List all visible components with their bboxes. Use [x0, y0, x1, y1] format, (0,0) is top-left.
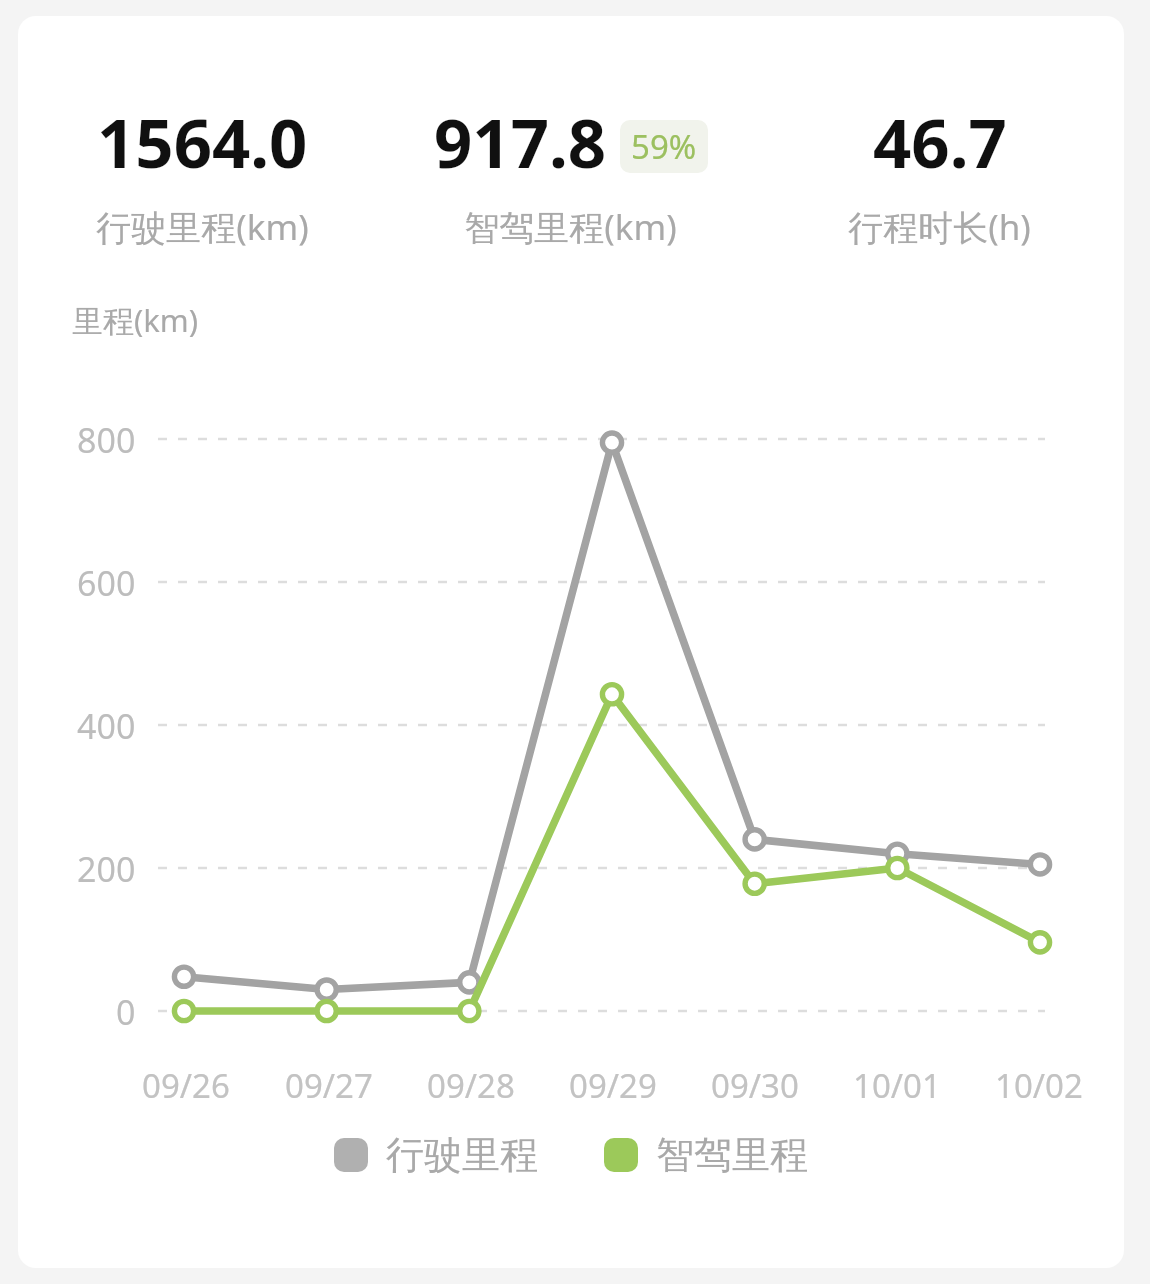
button[interactable]: 智驾里程 — [604, 1131, 808, 1179]
button[interactable]: 917.8 — [386, 96, 755, 251]
staticText: 智驾里程 — [656, 1131, 808, 1179]
staticText: 46.7 — [873, 96, 1007, 187]
staticText: 里程(km) — [72, 299, 199, 341]
staticText: 行驶里程(km) — [96, 203, 309, 251]
staticText: 09/30 — [711, 1063, 799, 1108]
staticText: 59% — [631, 124, 697, 169]
staticText: 800 — [77, 417, 136, 463]
staticText: 09/28 — [427, 1063, 515, 1108]
staticText: 智驾里程(km) — [464, 203, 677, 251]
staticText: 行驶里程 — [386, 1131, 538, 1179]
staticText: 200 — [77, 846, 136, 892]
button[interactable]: 行驶里程 — [334, 1131, 538, 1179]
staticText: 行程时长(h) — [848, 203, 1031, 251]
staticText: 10/02 — [995, 1063, 1083, 1108]
button[interactable]: 1564.0 — [18, 96, 386, 251]
staticText: 0 — [116, 989, 136, 1035]
staticText: 09/29 — [569, 1063, 657, 1108]
staticText: 400 — [77, 703, 136, 749]
staticText: 09/27 — [285, 1063, 373, 1108]
button[interactable]: 46.7 — [755, 96, 1124, 251]
staticText: 10/01 — [853, 1063, 941, 1108]
staticText: 1564.0 — [97, 96, 308, 187]
staticText: 917.8 — [434, 96, 607, 187]
staticText: 600 — [77, 560, 136, 606]
staticText: 09/26 — [142, 1063, 230, 1108]
